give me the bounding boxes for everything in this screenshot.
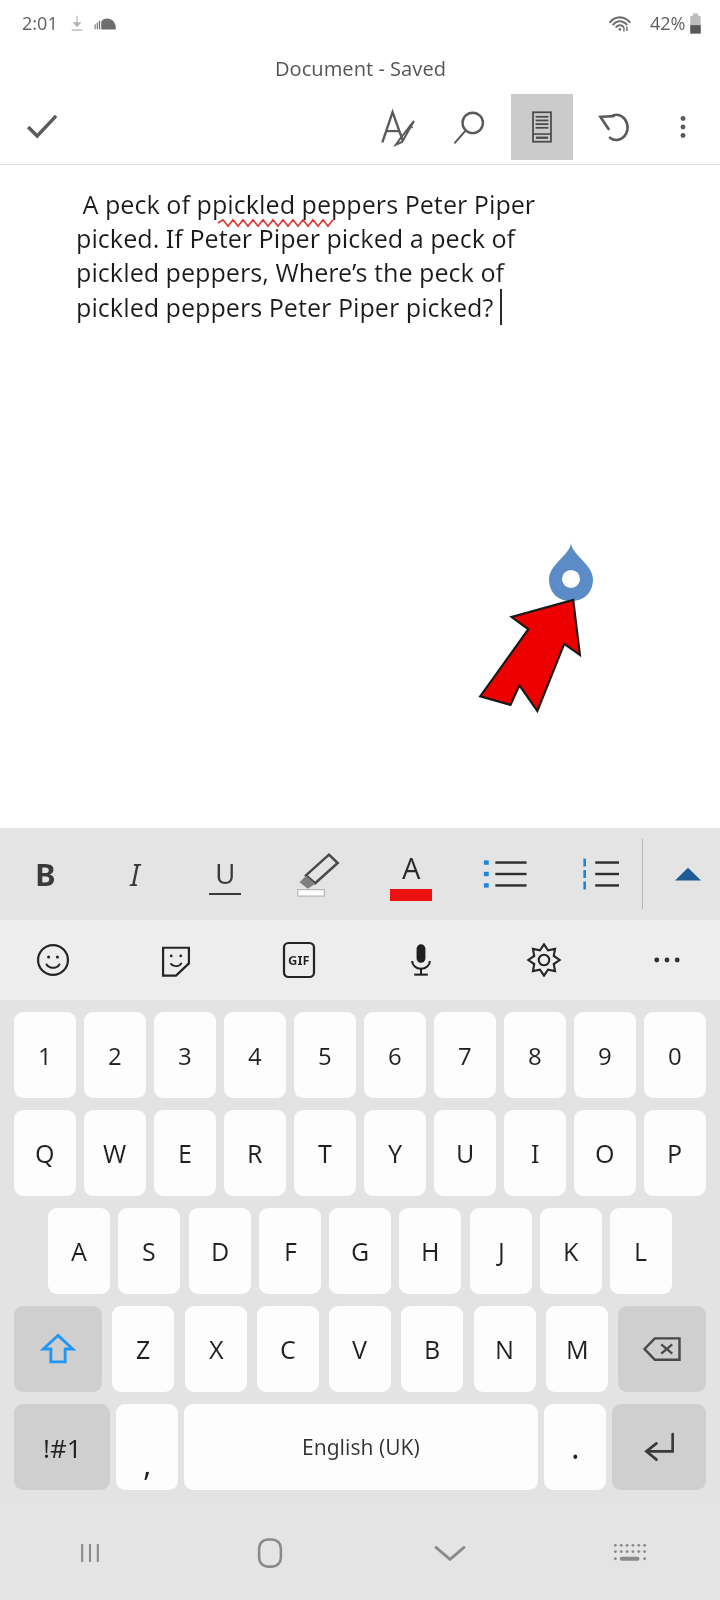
staticText: GIF	[288, 951, 310, 969]
staticText: ,	[143, 1442, 152, 1486]
button[interactable]: W	[84, 1110, 146, 1196]
button[interactable]: V	[329, 1306, 391, 1392]
staticText: pickled peppers Peter Piper picked?	[76, 290, 494, 324]
button[interactable]: C	[257, 1306, 319, 1392]
staticText: T	[318, 1136, 332, 1170]
button[interactable]: E	[154, 1110, 216, 1196]
staticText: pickled peppers, Where’s the peck of	[76, 255, 505, 289]
button[interactable]: Keyboard settings	[511, 920, 577, 1000]
button[interactable]: T	[294, 1110, 356, 1196]
staticText: B	[35, 853, 56, 895]
button[interactable]: Stickers	[143, 920, 209, 1000]
button[interactable]: P	[644, 1110, 706, 1196]
button[interactable]: X	[185, 1306, 247, 1392]
staticText: N	[495, 1332, 515, 1366]
button[interactable]: Symbols	[14, 1404, 110, 1490]
button[interactable]: S	[118, 1208, 180, 1294]
button[interactable]: Layout view	[506, 90, 578, 164]
staticText: U	[456, 1136, 475, 1170]
button[interactable]: Q	[14, 1110, 76, 1196]
staticText: 6	[388, 1039, 402, 1072]
button[interactable]: Undo	[578, 90, 650, 164]
staticText: V	[352, 1332, 368, 1366]
button[interactable]: 7	[434, 1012, 496, 1098]
button[interactable]: H	[399, 1208, 461, 1294]
staticText: P	[667, 1136, 683, 1170]
button[interactable]: GIF	[266, 920, 332, 1000]
button[interactable]: K	[540, 1208, 602, 1294]
button[interactable]: U	[180, 828, 270, 920]
button[interactable]	[552, 828, 642, 920]
button[interactable]: More options	[650, 90, 716, 164]
button[interactable]: Dictate	[587, 892, 671, 976]
button[interactable]: 4	[224, 1012, 286, 1098]
button[interactable]: M	[546, 1306, 608, 1392]
button[interactable]: Hide keyboard	[360, 1505, 540, 1600]
button[interactable]: Shift	[14, 1306, 102, 1392]
button[interactable]: Z	[112, 1306, 174, 1392]
staticText: Document - Saved	[275, 55, 446, 82]
button[interactable]: Enter	[612, 1404, 706, 1490]
button[interactable]: Emoji	[20, 920, 86, 1000]
button[interactable]: N	[474, 1306, 536, 1392]
button[interactable]: J	[470, 1208, 532, 1294]
staticText: F	[284, 1234, 297, 1268]
staticText: L	[634, 1234, 648, 1268]
button[interactable]: G	[329, 1208, 391, 1294]
button[interactable]: L	[610, 1208, 672, 1294]
button[interactable]: Backspace	[618, 1306, 706, 1392]
staticText: R	[247, 1136, 263, 1170]
staticText: Q	[35, 1136, 55, 1170]
button[interactable]: Space	[184, 1404, 538, 1490]
button[interactable]: 6	[364, 1012, 426, 1098]
button[interactable]: Switch keyboard	[540, 1505, 720, 1600]
staticText: !#1	[43, 1430, 82, 1465]
button[interactable]: 2	[84, 1012, 146, 1098]
button[interactable]: 5	[294, 1012, 356, 1098]
staticText: picked. If Peter Piper picked a peck of	[76, 221, 516, 255]
button[interactable]: 0	[644, 1012, 706, 1098]
button[interactable]: Recent apps	[0, 1505, 180, 1600]
button[interactable]: I	[504, 1110, 566, 1196]
button[interactable]: F	[259, 1208, 321, 1294]
staticText: H	[421, 1234, 440, 1268]
button[interactable]: I	[90, 828, 180, 920]
button[interactable]: R	[224, 1110, 286, 1196]
button[interactable]: 8	[504, 1012, 566, 1098]
button[interactable]	[270, 828, 364, 920]
button[interactable]: 9	[574, 1012, 636, 1098]
staticText: 2	[108, 1039, 122, 1072]
staticText: A peck of ppickled peppers Peter Piper	[76, 187, 536, 221]
button[interactable]: 1	[14, 1012, 76, 1098]
button[interactable]: More options	[634, 920, 700, 1000]
staticText: 4	[248, 1039, 262, 1072]
staticText: C	[280, 1332, 296, 1366]
button[interactable]: Voice input	[388, 920, 454, 1000]
button[interactable]	[458, 828, 552, 920]
staticText: S	[142, 1234, 156, 1268]
button[interactable]: B	[0, 828, 90, 920]
button[interactable]: Comma	[116, 1404, 178, 1490]
button[interactable]: Y	[364, 1110, 426, 1196]
button[interactable]: A	[364, 828, 458, 920]
button[interactable]: D	[189, 1208, 251, 1294]
button[interactable]: U	[434, 1110, 496, 1196]
staticText: I	[130, 854, 140, 895]
staticText: 8	[528, 1039, 542, 1072]
button[interactable]: Done	[10, 95, 74, 159]
staticText: Y	[388, 1136, 403, 1170]
button[interactable]: Edit text style	[362, 90, 434, 164]
staticText: I	[531, 1136, 540, 1170]
button[interactable]: O	[574, 1110, 636, 1196]
button[interactable]: Search	[434, 90, 506, 164]
staticText: X	[209, 1332, 224, 1366]
button[interactable]: A	[48, 1208, 110, 1294]
staticText: English (UK)	[302, 1433, 420, 1462]
button[interactable]: Period	[544, 1404, 606, 1490]
button[interactable]: Home	[180, 1505, 360, 1600]
staticText: K	[563, 1234, 579, 1268]
staticText: 0	[668, 1039, 682, 1072]
button[interactable]: Collapse toolbar	[656, 828, 720, 920]
button[interactable]: 3	[154, 1012, 216, 1098]
button[interactable]: B	[401, 1306, 463, 1392]
